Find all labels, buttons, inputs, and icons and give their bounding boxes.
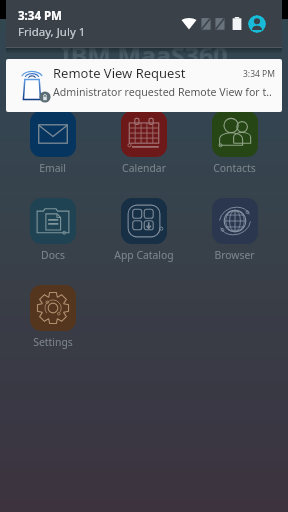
button[interactable]: Browser	[212, 198, 258, 262]
staticText: IBM MaaS360	[61, 38, 228, 72]
staticText: Friday, July 1	[18, 24, 86, 40]
staticText: App Catalog	[114, 248, 174, 262]
button[interactable]: Docs	[30, 198, 76, 262]
staticText: Settings	[33, 335, 73, 349]
staticText: Browser	[214, 248, 255, 262]
button[interactable]: User account	[248, 15, 266, 33]
staticText: Email	[39, 161, 66, 175]
staticText: 3:34 PM	[243, 68, 275, 80]
button[interactable]: Settings	[30, 285, 76, 349]
staticText: Calendar	[122, 161, 166, 175]
staticText: 3:34 PM	[18, 8, 62, 24]
button[interactable]: Calendar	[121, 111, 167, 175]
staticText: Contacts	[213, 161, 256, 175]
button[interactable]: Email	[30, 111, 76, 175]
staticText: Remote View Request	[53, 64, 186, 82]
button[interactable]: Remote View Request	[6, 59, 282, 112]
staticText: Administrator requested Remote View for …	[53, 85, 272, 99]
button[interactable]: App Catalog	[121, 198, 167, 262]
button[interactable]: Contacts	[212, 111, 258, 175]
staticText: Docs	[41, 248, 65, 262]
